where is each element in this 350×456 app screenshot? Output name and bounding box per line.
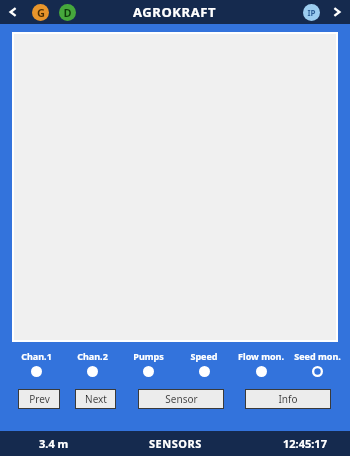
button[interactable]: Chan.2 [64,350,120,377]
button[interactable]: GPS status [32,4,49,21]
staticText: G [37,5,45,20]
button[interactable]: Sensor [138,389,224,409]
staticText: Speed [190,350,218,362]
staticText: Info [278,392,298,406]
staticText: Flow mon. [238,350,284,362]
staticText: D [63,5,72,20]
button[interactable]: Device status [59,4,76,21]
button[interactable]: Forward [328,3,346,21]
button[interactable]: IP address [303,4,320,21]
staticText: SENSORS [149,436,202,451]
staticText: 12:45:17 [283,436,327,451]
staticText: IP [307,7,316,18]
staticText: Seed mon. [294,350,341,362]
staticText: AGROKRAFT [133,3,217,21]
staticText: Prev [29,392,50,406]
button[interactable]: Speed [176,350,232,377]
button[interactable]: Next [75,389,116,409]
staticText: 3.4 m [39,436,69,451]
button[interactable]: Info [245,389,331,409]
staticText: Next [85,392,107,406]
staticText: Chan.1 [21,350,52,362]
button[interactable]: Seed mon. [290,350,344,377]
button[interactable]: Prev [18,389,60,409]
staticText: Chan.2 [77,350,108,362]
staticText: Sensor [165,392,198,406]
button[interactable]: Flow mon. [232,350,290,377]
button[interactable]: Chan.1 [8,350,64,377]
staticText: Pumps [133,350,164,362]
button[interactable]: Back [3,2,23,22]
button[interactable]: Pumps [120,350,176,377]
